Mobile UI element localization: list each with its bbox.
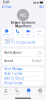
button[interactable]: video [24,28,33,37]
staticText: AG [19,11,26,19]
button[interactable]: Calls [11,87,23,96]
button[interactable]: Settings [34,87,46,96]
staticText: mobile [4,38,14,42]
staticText: call [17,34,19,36]
button[interactable]: Contacts [0,87,11,96]
button[interactable]: Share Contact [2,72,44,76]
button[interactable]: message [2,28,12,37]
button[interactable]: Add to Group [2,76,44,81]
button[interactable]: Notifications [2,49,44,57]
staticText: Sound [4,59,13,63]
staticText: Settings [38,93,43,95]
staticText: Add to Group [4,77,24,80]
staticText: Edit [39,5,44,9]
staticText: Notifications [4,51,21,54]
button[interactable]: mobile [2,38,44,46]
staticText: +55 11 91234-5678 [4,41,35,45]
button[interactable]: Edit [39,5,45,9]
button[interactable]: Chats [23,87,34,96]
button[interactable]: more [34,28,44,37]
staticText: Share Contact [4,72,22,75]
staticText: more [37,34,41,36]
staticText: Magalhaes [15,24,31,28]
staticText: Block Contact [4,81,22,85]
staticText: Chats [4,5,11,9]
button[interactable]: Sound [2,57,44,65]
staticText: Send Message [4,67,23,71]
staticText: Calls [16,93,19,95]
staticText: video [26,34,30,36]
button[interactable]: Send Message [2,67,44,71]
button[interactable]: Block Contact [2,81,44,85]
staticText: Chats [27,93,31,95]
button[interactable]: call [13,28,22,37]
staticText: message [3,34,10,36]
button[interactable]: Chats [1,5,11,9]
staticText: Contacts [3,93,9,95]
staticText: Alisson Germano [10,21,35,24]
staticText: Default [32,59,42,63]
staticText: 9:41 [3,1,10,4]
